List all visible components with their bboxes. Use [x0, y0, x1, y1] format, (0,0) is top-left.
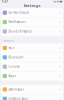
button[interactable]: Sounds & Haptics [1, 27, 63, 36]
button[interactable]: Bluetooth [1, 53, 63, 62]
staticText: Sounds & Haptics [8, 30, 31, 33]
staticText: Apps [8, 74, 15, 78]
button[interactable]: Apps [1, 72, 63, 81]
staticText: Wi-Fi [8, 46, 14, 50]
staticText: System apps [8, 88, 23, 91]
button[interactable]: System apps [1, 85, 63, 94]
button[interactable]: Wi-Fi [1, 43, 63, 52]
staticText: Do Not Disturb [8, 11, 29, 14]
staticText: 9:41 [2, 0, 9, 3]
button[interactable]: Installed apps [1, 94, 63, 100]
staticText: Settings [23, 3, 40, 8]
staticText: Installed apps [8, 97, 27, 100]
staticText: Notifications [8, 20, 25, 24]
staticText: Bluetooth [8, 56, 23, 59]
button[interactable]: Notifications [1, 18, 63, 27]
staticText: Cellular [8, 65, 19, 68]
staticText: NETWORK [3, 39, 15, 42]
button[interactable]: Do Not Disturb [1, 8, 63, 17]
button[interactable]: Cellular [1, 62, 63, 71]
